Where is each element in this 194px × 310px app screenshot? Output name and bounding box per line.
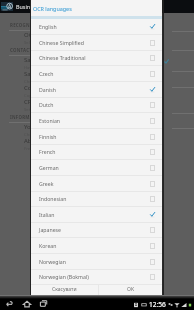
button[interactable]: Estonian [31,113,162,129]
button[interactable]: Korean [31,238,162,254]
staticText: Danish [39,86,56,93]
button[interactable]: Danish [31,82,162,98]
staticText: Czech [39,70,54,77]
staticText: Choose format [24,79,54,84]
button[interactable]: Greek [31,176,162,192]
button[interactable]: Chinese Traditional [31,50,162,66]
button[interactable]: Chinese Simplified [31,35,162,51]
button[interactable]: English [31,19,162,35]
staticText: Select languages [24,40,58,45]
staticText: OK [127,286,135,293]
staticText: English [39,23,57,30]
staticText: About [24,137,42,145]
button[interactable]: Norwegian (Bokmal) [31,269,162,285]
button[interactable]: Dutch [31,97,162,113]
button[interactable]: OK [99,284,162,295]
staticText: Settings [24,107,40,112]
staticText: Japanese [39,226,61,233]
staticText: Norwegian [39,258,66,265]
staticText: French [39,148,56,155]
button[interactable]: Back [6,300,13,307]
button[interactable]: Japanese [31,222,162,238]
staticText: Your account [24,123,61,131]
staticText: Norwegian (Bokmal) [39,273,89,280]
staticText: OCR languages [33,5,72,12]
staticText: Finnish [39,133,57,140]
button[interactable]: Norwegian [31,254,162,270]
staticText: Contact groups [24,84,68,92]
staticText: Copy to group [24,93,52,98]
staticText: Italian [39,211,55,218]
staticText: Choose plan [24,132,49,137]
staticText: Скасувати [52,286,77,293]
button[interactable]: Home [23,300,31,308]
button[interactable]: Скасувати [31,284,98,295]
staticText: RECOGNITION [10,22,45,28]
staticText: CONTACTS [10,47,35,53]
staticText: Korean [39,242,57,249]
staticText: German [39,164,59,171]
staticText: OCR languages [24,31,68,39]
staticText: Dutch [39,101,54,108]
staticText: Free version [24,146,49,151]
button[interactable]: Indonesian [31,191,162,207]
staticText: Indonesian [39,195,67,202]
staticText: Greek [39,180,54,187]
staticText: CRM export [24,98,57,106]
staticText: INFORMATION [10,114,45,120]
staticText: 12:56 [149,300,166,309]
staticText: Chinese Traditional [39,54,86,61]
button[interactable]: Recents [40,300,47,307]
staticText: Chinese Simplified [39,39,84,46]
staticText: Busine [16,3,34,10]
staticText: Have contacts [24,65,52,70]
staticText: Estonian [39,117,61,124]
button[interactable]: Czech [31,66,162,82]
button[interactable]: French [31,144,162,160]
button[interactable]: Finnish [31,129,162,145]
button[interactable]: Italian [31,207,162,223]
staticText: Save format [24,70,58,78]
staticText: Save to phone [24,56,65,64]
button[interactable]: German [31,160,162,176]
